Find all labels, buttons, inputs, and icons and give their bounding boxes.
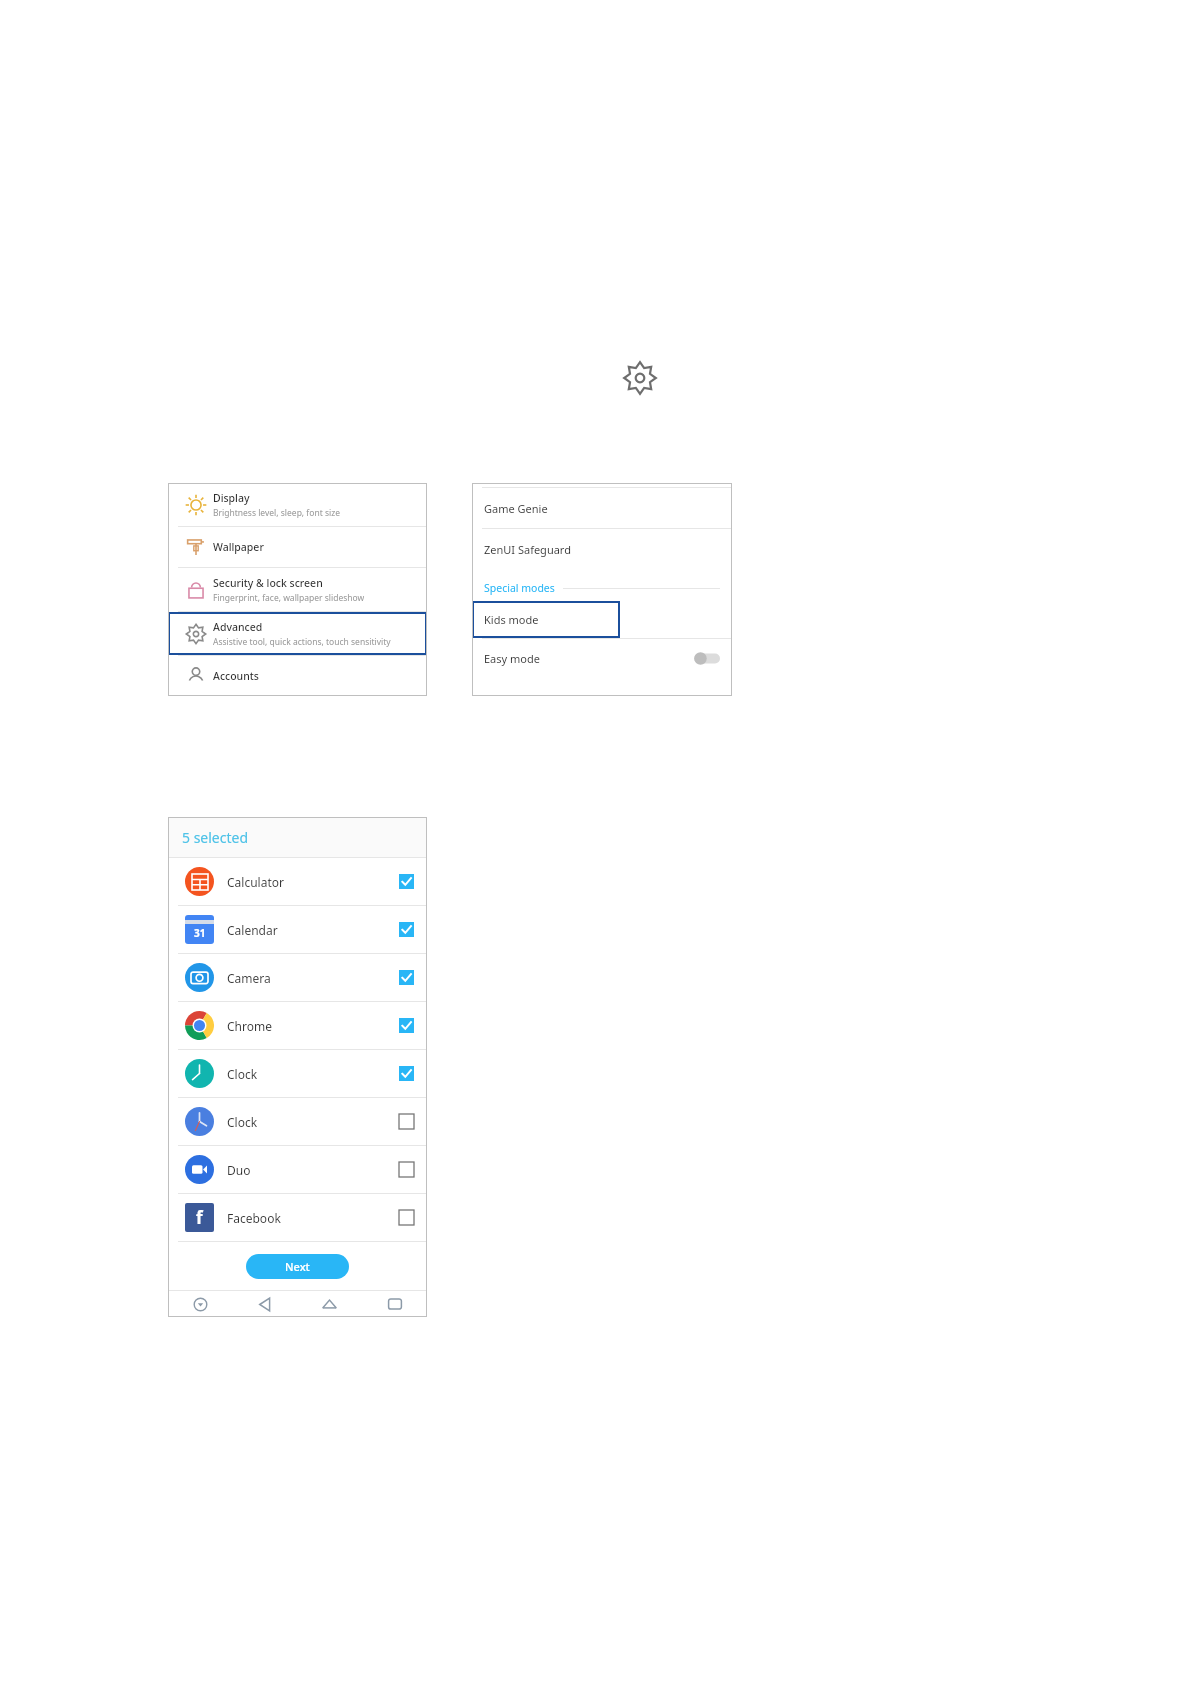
staticText: f [196, 1206, 203, 1229]
button[interactable]: 31 [181, 906, 414, 953]
staticText: Brightness level, sleep, font size [213, 507, 341, 519]
staticText: Calculator [227, 874, 284, 890]
staticText: Wallpaper [213, 540, 264, 554]
button[interactable]: Recents [362, 1291, 427, 1317]
staticText: Advanced [213, 620, 263, 634]
button[interactable]: Security & lock screen [168, 568, 427, 611]
staticText: Game Genie [484, 501, 548, 516]
button[interactable]: Advanced [168, 612, 427, 655]
staticText: Special modes [484, 581, 555, 595]
staticText: Security & lock screen [213, 576, 323, 590]
staticText: Clock [227, 1114, 258, 1130]
button[interactable]: Chrome [181, 1002, 414, 1049]
staticText: Display [213, 491, 250, 505]
staticText: Assistive tool, quick actions, touch sen… [213, 636, 391, 648]
staticText: 5 selected [182, 828, 249, 847]
button[interactable]: Home [297, 1291, 362, 1317]
staticText: ZenUI Safeguard [484, 542, 571, 557]
button[interactable]: Wallpaper [168, 527, 427, 567]
staticText: Camera [227, 970, 271, 986]
staticText: Clock [227, 1066, 258, 1082]
staticText: Calendar [227, 922, 278, 938]
staticText: Chrome [227, 1018, 272, 1034]
staticText: Kids mode [484, 612, 539, 627]
button[interactable]: Back [232, 1291, 297, 1317]
button[interactable]: Settings [622, 360, 658, 396]
staticText: Facebook [227, 1210, 281, 1226]
button[interactable]: Next [246, 1254, 349, 1279]
button[interactable]: Kids mode [472, 601, 620, 638]
staticText: Accounts [213, 669, 259, 683]
button[interactable] [694, 652, 720, 665]
button[interactable]: Display [168, 483, 427, 526]
button[interactable]: Camera [181, 954, 414, 1001]
button[interactable]: Duo [181, 1146, 414, 1193]
button[interactable]: Clock [181, 1050, 414, 1097]
button[interactable]: ZenUI Safeguard [484, 529, 732, 569]
staticText: Next [285, 1259, 310, 1274]
button[interactable]: Clock [181, 1098, 414, 1145]
staticText: Duo [227, 1162, 251, 1178]
button[interactable]: f [181, 1194, 414, 1241]
button[interactable]: Hide keyboard [168, 1291, 232, 1317]
staticText: 31 [194, 926, 206, 940]
button[interactable]: Game Genie [484, 488, 732, 528]
button[interactable]: Accounts [168, 656, 427, 696]
button[interactable]: Easy mode [484, 639, 720, 677]
staticText: Easy mode [484, 651, 540, 666]
button[interactable]: Calculator [181, 858, 414, 905]
staticText: Fingerprint, face, wallpaper slideshow [213, 592, 365, 604]
